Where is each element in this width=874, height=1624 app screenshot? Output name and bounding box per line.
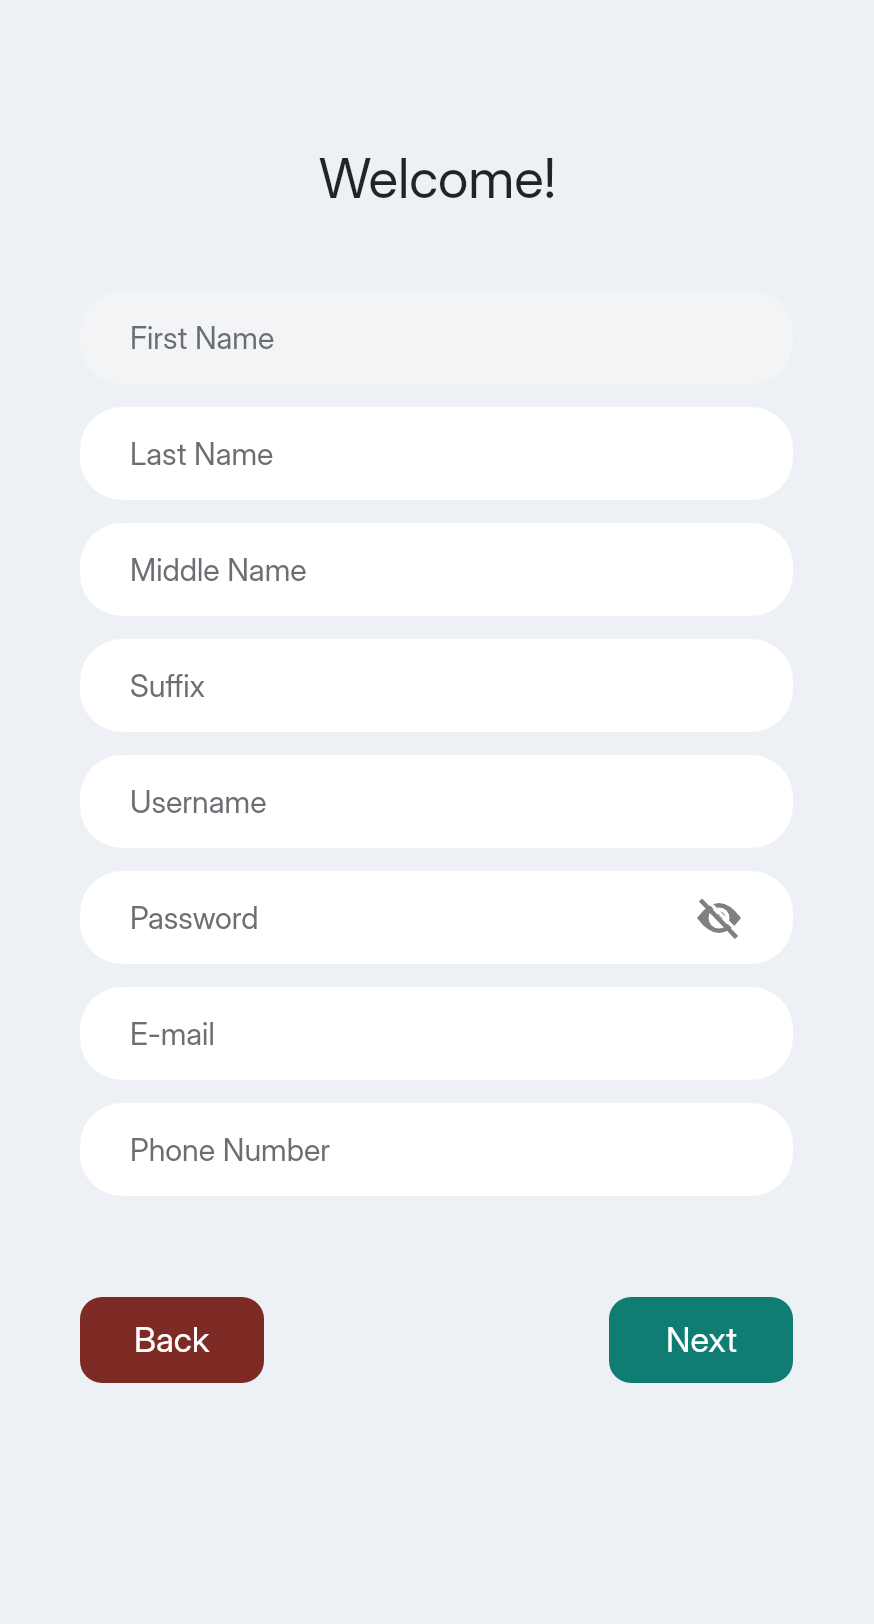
staticText: Username [130, 783, 267, 820]
staticText: Password [130, 899, 259, 936]
button[interactable]: Suffix [80, 639, 793, 732]
button[interactable]: Password [80, 871, 793, 964]
button[interactable]: Phone Number [80, 1103, 793, 1196]
staticText: Middle Name [130, 551, 307, 588]
staticText: Phone Number [130, 1131, 331, 1168]
staticText: Next [666, 1319, 737, 1361]
staticText: First Name [130, 319, 275, 356]
button[interactable]: Back [80, 1297, 264, 1383]
staticText: Last Name [130, 435, 274, 472]
button[interactable]: Username [80, 755, 793, 848]
staticText: E-mail [130, 1015, 215, 1052]
staticText: Back [134, 1319, 210, 1361]
button[interactable]: Last Name [80, 407, 793, 500]
staticText: Suffix [130, 667, 205, 704]
staticText: Welcome! [319, 145, 556, 212]
button[interactable]: Next [609, 1297, 793, 1383]
button[interactable]: E-mail [80, 987, 793, 1080]
button[interactable]: First Name [80, 291, 793, 384]
button[interactable]: Middle Name [80, 523, 793, 616]
